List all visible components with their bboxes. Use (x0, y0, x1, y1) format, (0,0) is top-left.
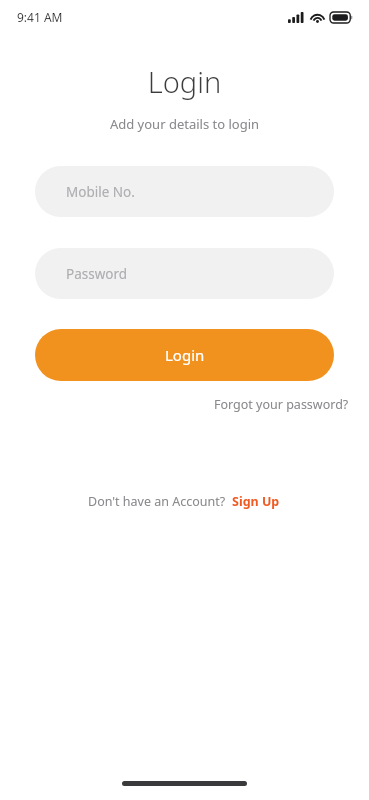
staticText: Mobile No. (66, 183, 135, 201)
other: Cellular signal (288, 12, 305, 23)
staticText: Forgot your password? (214, 396, 349, 413)
button[interactable]: Login (35, 329, 334, 381)
staticText: Password (66, 265, 128, 283)
staticText: Login (0, 62, 369, 101)
button[interactable]: Forgot your password? (212, 393, 351, 416)
button[interactable]: Sign Up (231, 491, 281, 512)
staticText: Sign Up (232, 493, 280, 510)
button[interactable]: Password (35, 248, 334, 299)
staticText: 9:41 AM (17, 9, 63, 25)
button[interactable]: Mobile No. (35, 166, 334, 217)
staticText: Add your details to login (0, 115, 369, 133)
other: Battery (330, 12, 353, 23)
other: Wi-Fi (310, 12, 325, 23)
staticText: Login (165, 345, 205, 365)
staticText: Don't have an Account? (88, 493, 226, 510)
